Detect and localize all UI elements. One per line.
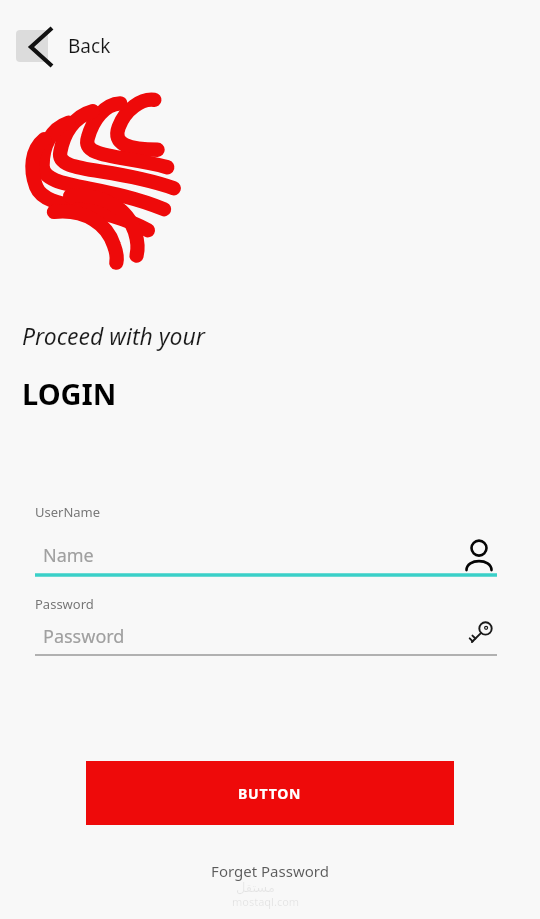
button[interactable]: BUTTON (86, 761, 454, 825)
staticText: مستقل (236, 880, 275, 895)
staticText: mostaql.com (232, 894, 300, 909)
staticText: Name (43, 543, 94, 568)
staticText: BUTTON (238, 784, 302, 803)
button[interactable]: Password (35, 618, 503, 656)
staticText: Back (68, 33, 111, 59)
button[interactable]: Back (8, 22, 138, 70)
staticText: UserName (35, 503, 101, 521)
button[interactable]: Name (35, 538, 503, 576)
staticText: Proceed with your (22, 320, 206, 351)
staticText: Forget Password (211, 861, 329, 881)
button[interactable]: Forget Password (180, 855, 360, 887)
staticText: LOGIN (22, 374, 117, 413)
staticText: Password (35, 595, 94, 613)
staticText: Password (43, 624, 125, 649)
